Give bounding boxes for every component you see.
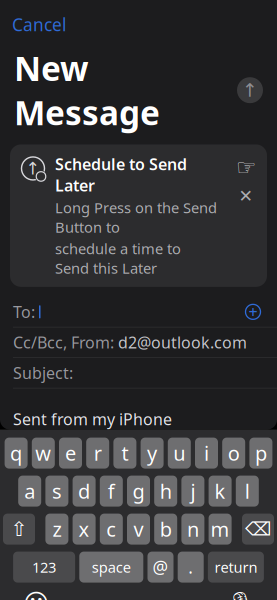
button[interactable]: z (45, 514, 68, 545)
staticText: ↑ (25, 159, 40, 178)
button[interactable]: Send (237, 77, 263, 103)
button[interactable]: Emoji (21, 589, 51, 600)
staticText: f (108, 478, 115, 504)
staticText: l (245, 478, 250, 504)
button[interactable]: return (208, 552, 264, 583)
staticText: Schedule to Send Later (55, 153, 187, 196)
button[interactable]: v (127, 514, 150, 545)
staticText: r (94, 440, 102, 466)
staticText: x (79, 516, 90, 542)
staticText: w (35, 440, 51, 466)
button[interactable]: ↑ (10, 144, 267, 287)
staticText: b (160, 516, 172, 542)
staticText: e (65, 440, 76, 466)
button[interactable]: c (100, 514, 123, 545)
staticText: i (204, 440, 209, 466)
button[interactable]: w (32, 438, 55, 469)
button[interactable]: m (209, 514, 232, 545)
staticText: u (173, 440, 185, 466)
staticText: space (92, 557, 131, 577)
button[interactable]: o (222, 438, 245, 469)
staticText: ☺ (23, 589, 49, 600)
button[interactable]: Add Contact (242, 301, 264, 323)
staticText: p (255, 440, 267, 466)
staticText: 123 (32, 557, 56, 577)
button[interactable]: @ (147, 552, 173, 583)
staticText: New Message (14, 46, 160, 134)
staticText: schedule a time to Send this Later (55, 239, 181, 278)
staticText: + (248, 301, 257, 322)
staticText: g (132, 478, 144, 504)
staticText: q (10, 440, 22, 466)
staticText: ⌫ (245, 518, 271, 540)
staticText: o (228, 440, 240, 466)
button[interactable]: y (141, 438, 164, 469)
staticText: h (160, 478, 172, 504)
staticText: m (211, 516, 230, 542)
button[interactable]: n (181, 514, 204, 545)
button[interactable]: space (79, 552, 143, 583)
button[interactable]: i (195, 438, 218, 469)
button[interactable]: Shift (3, 514, 35, 545)
staticText: k (215, 478, 226, 504)
button[interactable]: f (100, 476, 123, 507)
button[interactable]: j (181, 476, 204, 507)
button[interactable]: . (178, 552, 204, 583)
staticText: Cancel (12, 13, 66, 36)
button[interactable]: e (59, 438, 82, 469)
staticText: s (52, 478, 62, 504)
staticText: z (52, 516, 61, 542)
staticText: . (188, 556, 193, 579)
staticText: Long Press on the Send Button to (55, 198, 217, 237)
button[interactable]: Cancel (0, 9, 78, 40)
staticText: y (147, 440, 157, 466)
button[interactable]: 123 (13, 552, 75, 583)
button[interactable]: u (168, 438, 191, 469)
button[interactable]: b (154, 514, 177, 545)
staticText: v (133, 516, 143, 542)
button[interactable]: q (5, 438, 28, 469)
button[interactable]: Dictation (226, 589, 256, 600)
button[interactable]: a (18, 476, 41, 507)
staticText: t (121, 440, 128, 466)
staticText: return (214, 557, 257, 577)
button[interactable]: d (73, 476, 96, 507)
staticText: 🎙 (226, 591, 255, 600)
button[interactable]: g (127, 476, 150, 507)
button[interactable]: h (154, 476, 177, 507)
staticText: Subject: (13, 362, 73, 383)
staticText: ↑ (242, 80, 258, 101)
button[interactable]: Delete (242, 514, 274, 545)
staticText: ☞ (236, 154, 256, 180)
staticText: ⇧ (10, 518, 27, 540)
staticText: c (106, 516, 116, 542)
button[interactable]: p (249, 438, 272, 469)
staticText: n (187, 516, 199, 542)
staticText: d2@outlook.com (118, 332, 247, 353)
staticText: Sent from my iPhone (13, 408, 172, 430)
staticText: @ (152, 556, 168, 579)
button[interactable]: k (209, 476, 232, 507)
staticText: d (78, 478, 90, 504)
button[interactable]: s (45, 476, 68, 507)
staticText: Cc/Bcc, From: (13, 332, 118, 353)
button[interactable]: t (113, 438, 136, 469)
button[interactable]: l (236, 476, 259, 507)
staticText: a (24, 478, 35, 504)
staticText: j (190, 478, 195, 504)
staticText: ✕ (238, 186, 253, 206)
staticText: To: (13, 301, 35, 322)
button[interactable]: x (73, 514, 96, 545)
button[interactable]: r (86, 438, 109, 469)
